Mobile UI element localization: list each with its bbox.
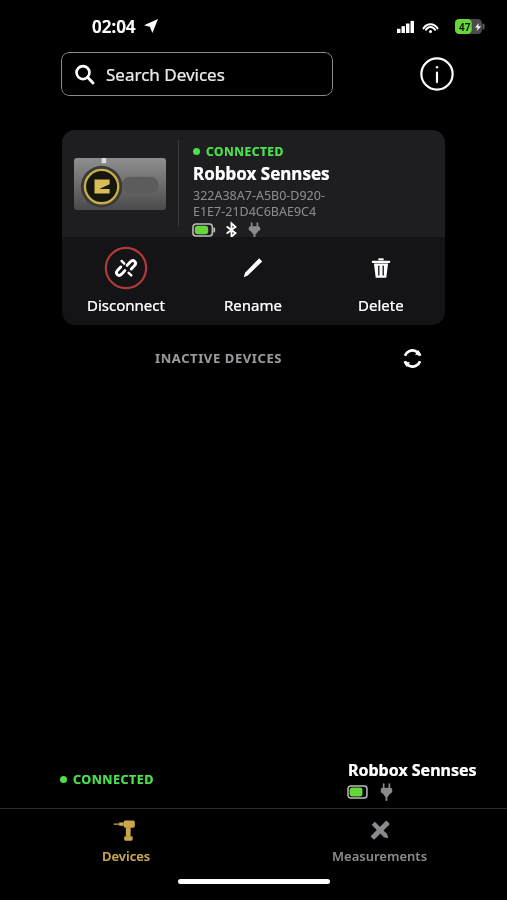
staticText: CONNECTED <box>73 771 154 788</box>
staticText: INACTIVE DEVICES <box>155 349 283 367</box>
button[interactable]: Information <box>417 54 457 94</box>
button[interactable]: Delete <box>317 237 445 325</box>
staticText: Devices <box>102 847 151 865</box>
button[interactable]: Devices <box>0 809 253 871</box>
staticText: 02:04 <box>92 15 136 38</box>
staticText: 322A38A7-A5B0-D920- E1E7-21D4C6BAE9C4 <box>193 187 325 219</box>
staticText: Delete <box>358 295 404 315</box>
staticText: Disconnect <box>87 295 165 315</box>
staticText: CONNECTED <box>206 143 284 159</box>
staticText: Rename <box>224 295 282 315</box>
staticText: 47 <box>459 20 471 34</box>
staticText: Measurements <box>332 847 428 865</box>
button[interactable]: Disconnect <box>62 237 189 325</box>
button[interactable]: Search Devices <box>61 52 333 96</box>
button[interactable]: Measurements <box>253 809 507 871</box>
button[interactable]: CONNECTED <box>62 130 445 237</box>
staticText: Search Devices <box>106 63 225 86</box>
button[interactable]: Rename <box>189 237 317 325</box>
button[interactable]: Refresh <box>395 341 429 375</box>
staticText: Robbox Sennses <box>348 759 477 781</box>
staticText: Robbox Sennses <box>193 162 330 185</box>
